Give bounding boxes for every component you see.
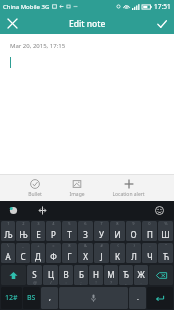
button[interactable]: %	[158, 221, 173, 241]
staticText: &	[84, 243, 87, 248]
button[interactable]: Image	[68, 179, 86, 198]
button[interactable]: 0	[142, 221, 157, 241]
staticText: ,	[125, 280, 127, 285]
button[interactable]: Handwriting input	[6, 203, 21, 218]
staticText: К	[115, 251, 120, 262]
button[interactable]: 12#	[1, 287, 22, 309]
button[interactable]: 3	[31, 221, 45, 241]
button[interactable]: Close	[0, 13, 24, 34]
staticText: Д	[35, 251, 41, 262]
staticText: Ј	[100, 251, 103, 262]
staticText: Location alert	[112, 191, 145, 198]
staticText: Р	[51, 229, 56, 240]
button[interactable]: 9	[126, 221, 141, 241]
button[interactable]: #	[94, 243, 109, 263]
staticText: Ц	[48, 269, 54, 280]
button[interactable]: .	[129, 287, 146, 309]
staticText: @	[33, 280, 37, 285]
button[interactable]: Location alert	[111, 179, 146, 198]
staticText: Image	[69, 191, 85, 198]
button[interactable]: 8	[62, 243, 77, 263]
staticText: О	[130, 229, 137, 240]
button[interactable]: 2	[16, 221, 30, 241]
staticText: Ћ	[163, 251, 169, 262]
button[interactable]: 8	[110, 221, 125, 241]
staticText: !	[95, 280, 97, 285]
staticText: Ж	[137, 269, 145, 280]
button[interactable]: Ђ	[119, 265, 133, 285]
staticText: М	[107, 269, 115, 280]
button[interactable]: 7	[94, 221, 109, 241]
button[interactable]: BS	[23, 287, 40, 309]
staticText: BS	[27, 293, 36, 303]
staticText: 8	[116, 221, 119, 226]
button[interactable]: )	[126, 243, 141, 263]
staticText: 6	[84, 221, 87, 226]
button[interactable]: Save	[150, 13, 174, 34]
staticText: ;	[80, 280, 82, 285]
button[interactable]: 4	[46, 221, 61, 241]
button[interactable]: В	[59, 265, 73, 285]
staticText: %	[164, 221, 168, 226]
staticText: 4	[52, 221, 55, 226]
staticText: 7	[100, 221, 103, 226]
staticText: Њ	[19, 229, 28, 240]
staticText: Л	[131, 251, 137, 262]
button[interactable]: Cursor control	[35, 203, 50, 218]
button[interactable]: Emoji	[151, 202, 168, 219]
button[interactable]: &	[78, 243, 93, 263]
staticText: И	[114, 229, 121, 240]
staticText: /	[50, 280, 52, 285]
button[interactable]: 5	[62, 221, 77, 241]
staticText: Ѕ	[32, 269, 37, 280]
button[interactable]: Ц	[43, 265, 58, 285]
button[interactable]: Space	[59, 287, 128, 309]
button[interactable]: Backspace	[149, 265, 173, 285]
button[interactable]: 6	[78, 221, 93, 241]
staticText: Mar 20, 2015, 17:15	[10, 42, 66, 50]
button[interactable]: Enter	[147, 287, 173, 309]
staticText: #	[100, 243, 103, 248]
button[interactable]: _	[16, 243, 30, 263]
staticText: Edit note	[69, 18, 106, 30]
staticText: 0	[148, 221, 151, 226]
staticText: 8	[68, 243, 71, 248]
staticText: 12#	[5, 293, 18, 303]
button[interactable]: "	[158, 243, 173, 263]
staticText: (	[117, 243, 119, 248]
button[interactable]: Ѕ	[27, 265, 42, 285]
button[interactable]: М	[104, 265, 118, 285]
staticText: 3	[37, 221, 40, 226]
staticText: А	[5, 251, 11, 262]
button[interactable]: Н	[89, 265, 103, 285]
button[interactable]: +	[31, 243, 45, 263]
button[interactable]: Bullet	[27, 179, 43, 198]
staticText: П	[147, 229, 153, 240]
button[interactable]: \	[1, 243, 15, 263]
button[interactable]: (	[110, 243, 125, 263]
staticText: China Mobile 3G	[3, 3, 50, 11]
staticText: =	[52, 243, 55, 248]
button[interactable]: =	[46, 243, 61, 263]
staticText: 5	[68, 221, 71, 226]
button[interactable]: Shift	[1, 265, 26, 285]
staticText: ?	[110, 280, 112, 285]
staticText: _	[22, 243, 24, 248]
button[interactable]: Б	[74, 265, 88, 285]
staticText: В	[63, 269, 69, 280]
button[interactable]: 1	[1, 221, 15, 241]
button[interactable]: -	[142, 243, 157, 263]
staticText: Г	[67, 251, 72, 262]
staticText: Ш	[161, 229, 170, 240]
button[interactable]: ,	[41, 287, 58, 309]
staticText: 9	[132, 221, 135, 226]
button[interactable]: Ж	[134, 265, 148, 285]
staticText: Ч	[147, 251, 153, 262]
staticText: Ђ	[123, 269, 129, 280]
staticText: 2	[22, 221, 25, 226]
staticText: ,	[49, 293, 51, 303]
staticText: Е	[36, 229, 41, 240]
staticText: )	[133, 243, 135, 248]
staticText: Bullet	[28, 191, 42, 198]
